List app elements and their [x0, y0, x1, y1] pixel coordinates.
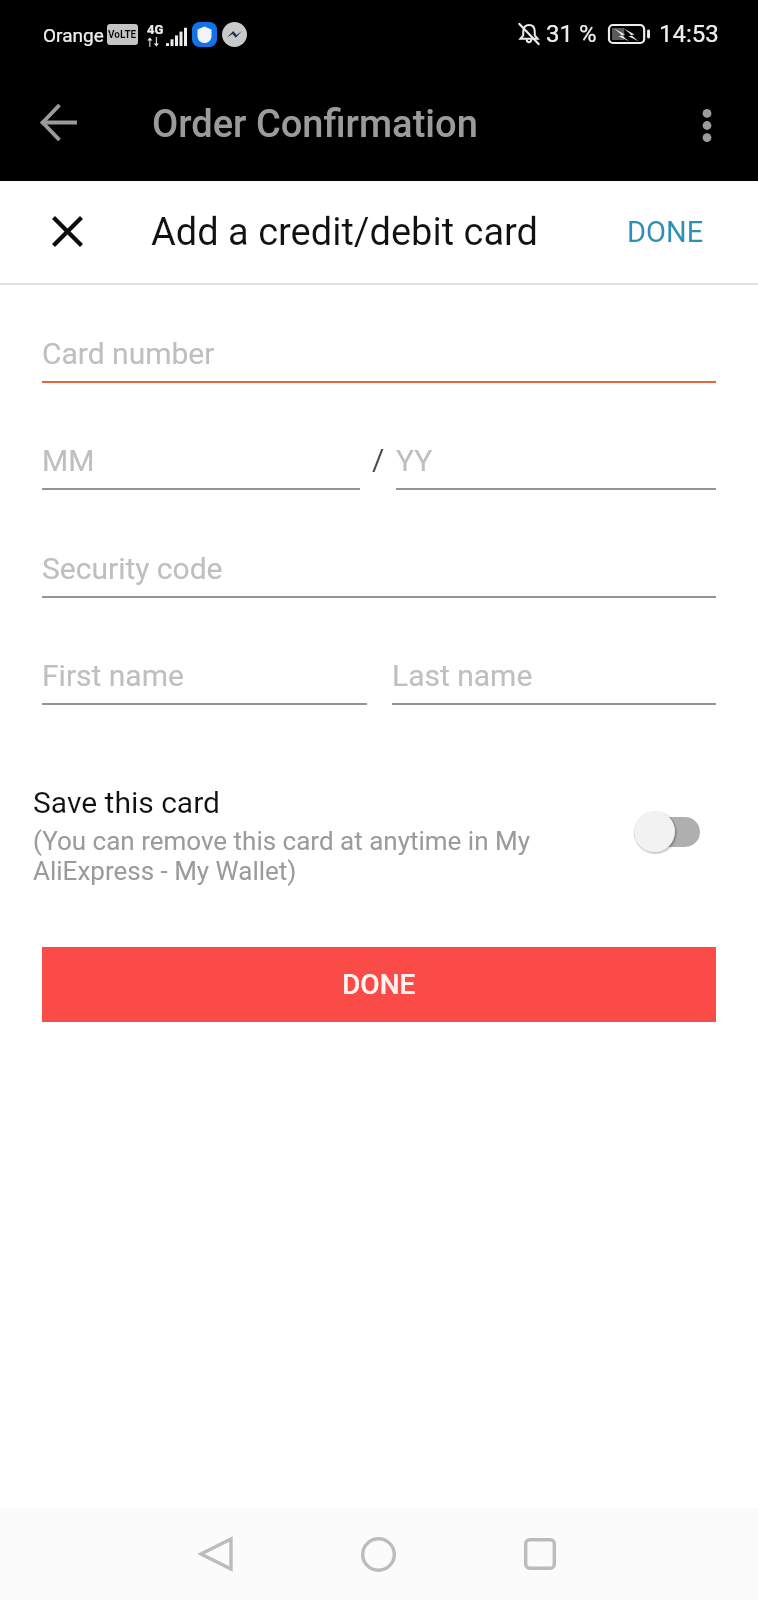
- button[interactable]: Back: [25, 88, 93, 156]
- button[interactable]: Recent apps: [500, 1514, 580, 1594]
- staticText: Orange: [43, 24, 104, 46]
- staticText: 31 %: [546, 20, 597, 48]
- button[interactable]: More options: [673, 91, 741, 159]
- button[interactable]: Save this card: [634, 805, 700, 857]
- staticText: (You can remove this card at anytime in …: [33, 826, 622, 886]
- button[interactable]: Home: [338, 1514, 418, 1594]
- staticText: Security code: [42, 551, 223, 586]
- staticText: 4G: [147, 22, 164, 37]
- button[interactable]: Close: [33, 197, 101, 265]
- button[interactable]: DONE: [42, 947, 716, 1022]
- staticText: Save this card: [33, 785, 220, 820]
- staticText: /: [372, 442, 385, 477]
- staticText: VoLTE: [108, 29, 137, 41]
- staticText: Card number: [42, 336, 215, 371]
- button[interactable]: Back: [176, 1514, 256, 1594]
- staticText: DONE: [342, 968, 416, 1001]
- staticText: YY: [396, 443, 433, 478]
- staticText: First name: [42, 658, 184, 693]
- staticText: MM: [42, 443, 95, 478]
- staticText: 14:53: [659, 20, 719, 48]
- button[interactable]: DONE: [585, 191, 746, 273]
- staticText: Add a credit/debit card: [151, 210, 539, 255]
- staticText: Order Confirmation: [152, 102, 478, 147]
- staticText: DONE: [627, 215, 704, 249]
- staticText: Last name: [392, 658, 533, 693]
